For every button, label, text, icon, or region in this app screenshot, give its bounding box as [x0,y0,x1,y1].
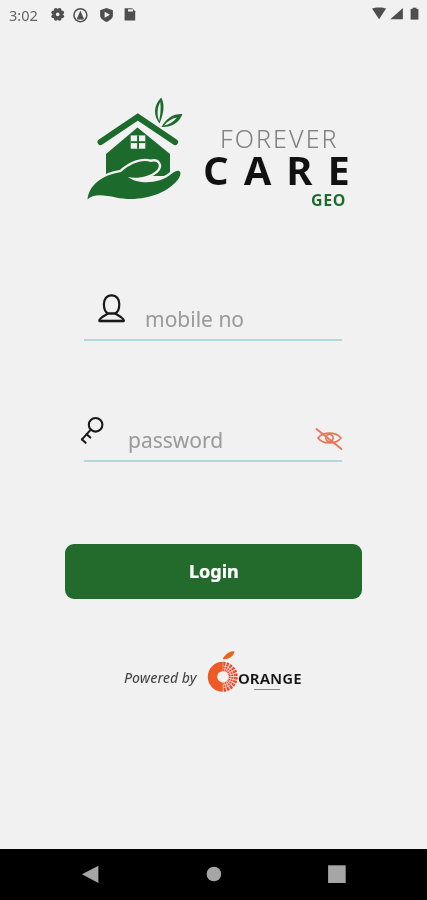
staticText: CARE [203,142,365,196]
button[interactable]: Login [65,544,362,599]
staticText: Login [189,559,239,584]
staticText: FOREVER [220,121,339,155]
staticText: GEO [311,189,347,211]
staticText: password [128,426,224,455]
staticText: mobile no [145,305,245,334]
button[interactable]: Recents [309,857,365,891]
button[interactable]: Show password [314,418,344,444]
staticText: ORANGE [238,668,302,688]
staticText: Powered by [124,668,197,687]
button[interactable]: Back [62,857,118,891]
staticText: 3:02 [9,5,38,25]
button[interactable]: Home [186,857,242,891]
